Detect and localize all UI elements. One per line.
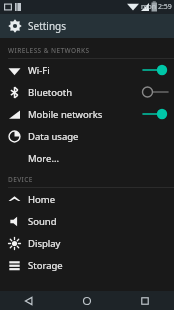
- button[interactable]: Storage: [0, 254, 174, 276]
- staticText: Storage: [28, 259, 140, 272]
- button[interactable]: Sound: [0, 210, 174, 232]
- button[interactable]: Mobile networks: [0, 103, 174, 125]
- button[interactable]: Home: [58, 291, 116, 310]
- staticText: Home: [28, 193, 140, 206]
- staticText: Settings: [28, 19, 67, 33]
- button[interactable]: Data usage: [0, 125, 174, 147]
- staticText: Data usage: [28, 130, 140, 143]
- button[interactable]: Toggle Wi-Fi: [140, 59, 174, 81]
- staticText: Display: [28, 237, 140, 250]
- staticText: Wi-Fi: [28, 64, 140, 77]
- staticText: DEVICE: [8, 175, 33, 184]
- staticText: Sound: [28, 215, 140, 228]
- staticText: More...: [28, 152, 140, 165]
- button[interactable]: More...: [0, 147, 174, 169]
- staticText: Bluetooth: [28, 86, 140, 99]
- button[interactable]: Back: [0, 291, 58, 310]
- button[interactable]: Wi-Fi: [0, 59, 174, 81]
- staticText: mon 2:59: [141, 2, 172, 12]
- button[interactable]: Toggle Bluetooth: [140, 81, 174, 103]
- button[interactable]: Bluetooth: [0, 81, 174, 103]
- button[interactable]: Recents: [116, 291, 174, 310]
- staticText: WIRELESS & NETWORKS: [8, 46, 90, 55]
- button[interactable]: Display: [0, 232, 174, 254]
- button[interactable]: Toggle Mobile networks: [140, 103, 174, 125]
- button[interactable]: Home: [0, 188, 174, 210]
- staticText: Mobile networks: [28, 108, 140, 121]
